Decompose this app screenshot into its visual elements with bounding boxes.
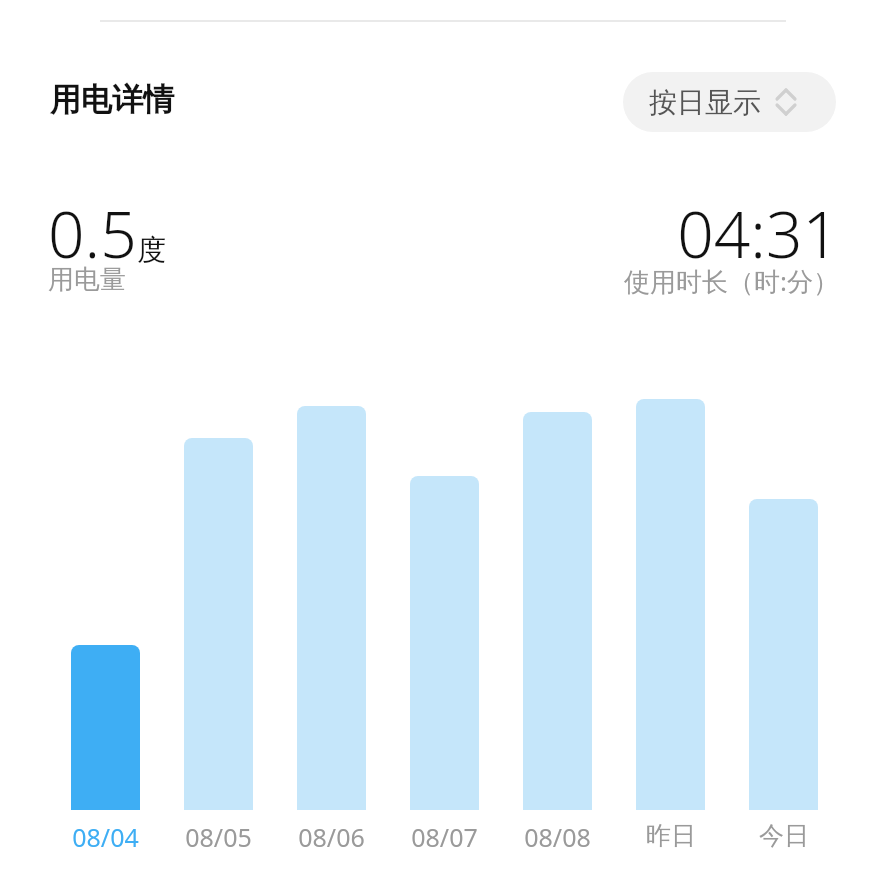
staticText: 按日显示: [649, 85, 761, 120]
button[interactable]: 08/08: [511, 820, 604, 862]
staticText: 08/07: [411, 820, 478, 854]
button[interactable]: 08/07: [398, 820, 491, 862]
button[interactable]: 08/06: [285, 820, 378, 862]
button[interactable]: 08/04: [59, 820, 152, 862]
other: Usage bar chart: [0, 380, 887, 810]
staticText: 08/08: [524, 820, 591, 854]
staticText: 昨日: [646, 820, 696, 851]
button[interactable]: 按日显示: [623, 72, 836, 132]
staticText: 度: [137, 232, 166, 269]
staticText: 08/05: [185, 820, 252, 854]
button[interactable]: 08/05: [172, 820, 265, 862]
button[interactable]: 昨日: [624, 820, 717, 862]
button[interactable]: 今日: [737, 820, 830, 862]
staticText: 使用时长（时:分）: [624, 263, 839, 299]
staticText: 今日: [759, 820, 809, 851]
staticText: 08/06: [298, 820, 365, 854]
staticText: 0.5: [48, 190, 137, 277]
staticText: 08/04: [72, 820, 139, 854]
staticText: 04:31: [677, 190, 839, 277]
staticText: 用电详情: [50, 80, 174, 119]
staticText: 用电量: [48, 263, 126, 296]
